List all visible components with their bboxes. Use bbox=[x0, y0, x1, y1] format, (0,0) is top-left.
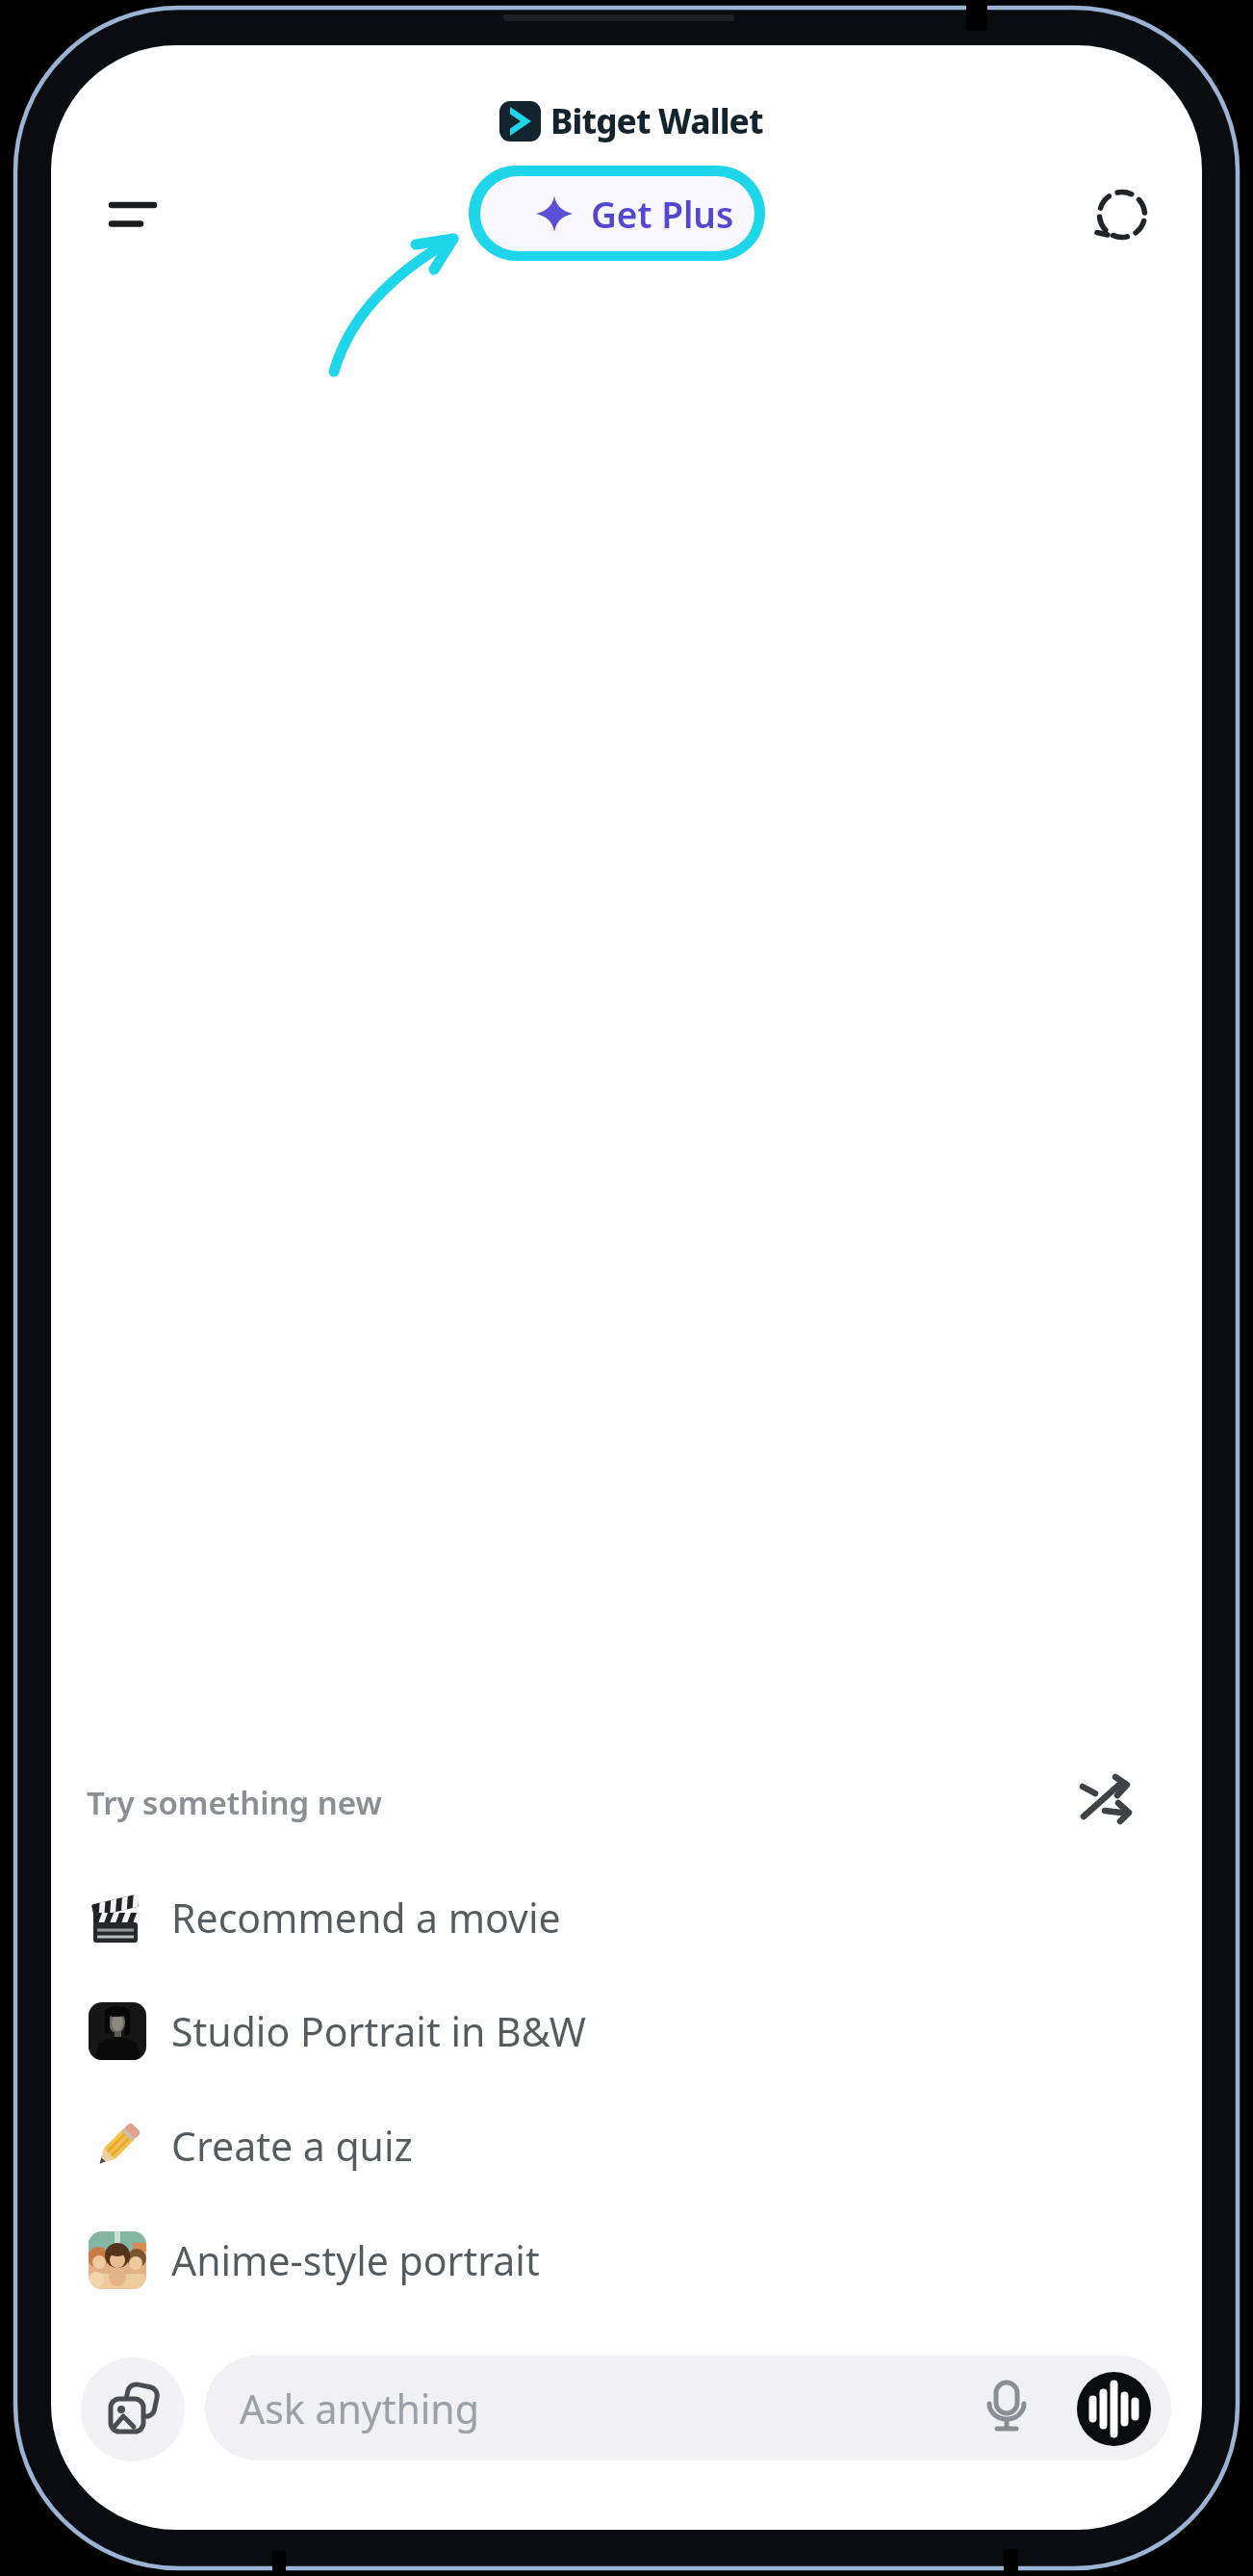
staticText: Create a quiz bbox=[171, 2119, 413, 2173]
button[interactable] bbox=[91, 178, 173, 245]
staticText: Ask anything bbox=[240, 2382, 479, 2435]
button[interactable] bbox=[1086, 178, 1159, 251]
staticText: Studio Portrait in B&W bbox=[171, 2004, 586, 2058]
button[interactable]: Recommend a movie bbox=[77, 1865, 1174, 1971]
staticText: Try something new bbox=[87, 1781, 382, 1824]
staticText: Get Plus bbox=[591, 190, 734, 238]
button[interactable] bbox=[81, 2357, 185, 2461]
staticText: Bitget Wallet bbox=[550, 98, 763, 144]
button[interactable] bbox=[1072, 1768, 1139, 1832]
staticText: Recommend a movie bbox=[171, 1891, 561, 1945]
button[interactable]: Get Plus bbox=[469, 166, 765, 261]
button[interactable] bbox=[1077, 2372, 1151, 2446]
button[interactable]: Studio Portrait in B&W bbox=[77, 1978, 1174, 2084]
button[interactable]: Create a quiz bbox=[77, 2093, 1174, 2199]
button[interactable]: Anime-style portrait bbox=[77, 2207, 1174, 2313]
staticText: Anime-style portrait bbox=[171, 2233, 540, 2287]
button[interactable]: Ask anything bbox=[205, 2356, 1171, 2460]
